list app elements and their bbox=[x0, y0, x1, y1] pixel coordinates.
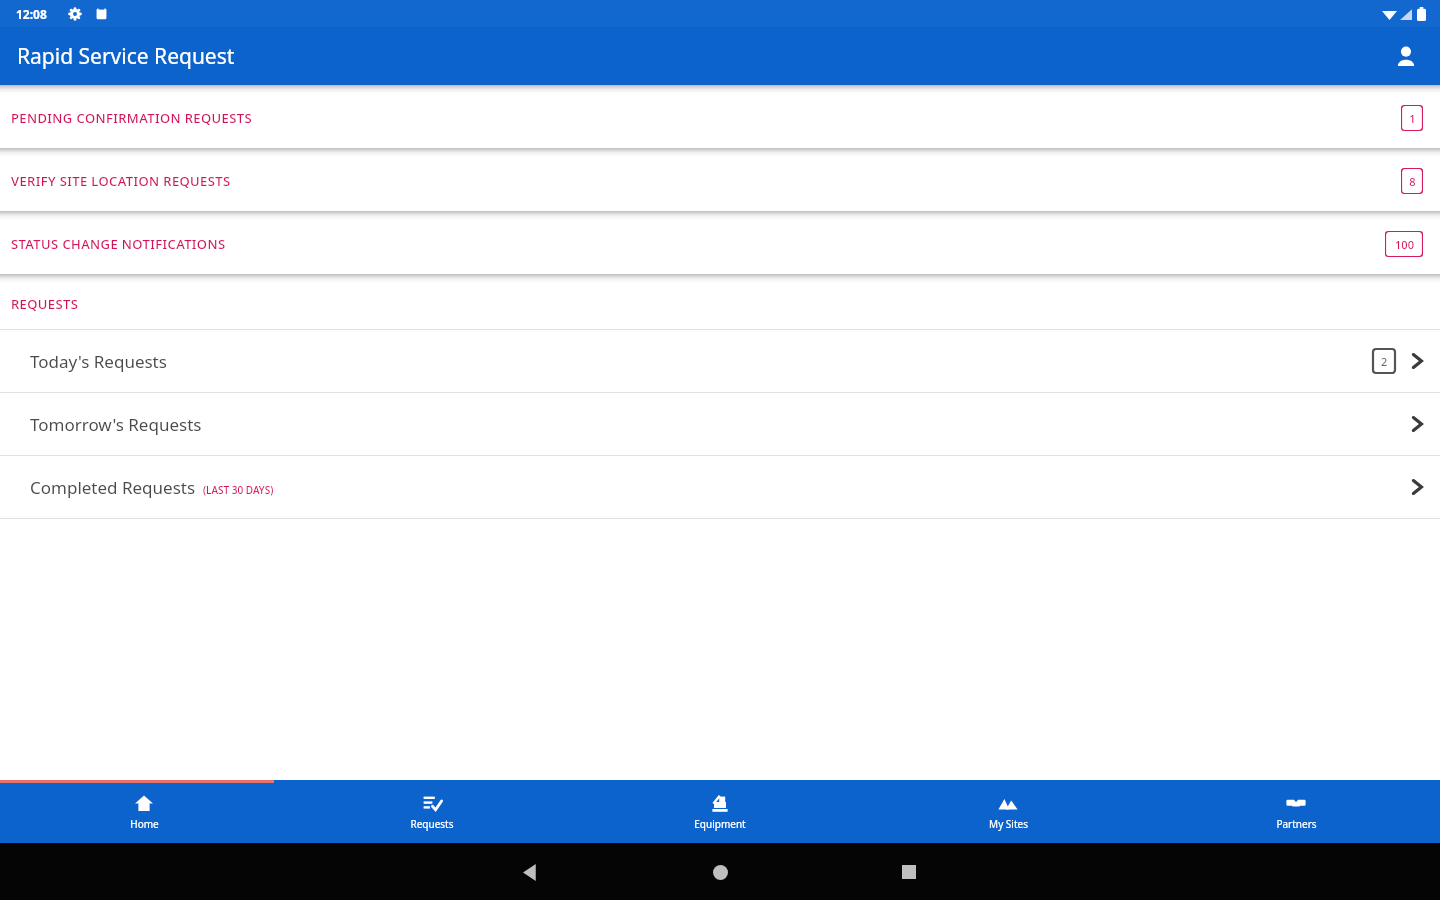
button[interactable]: Requests bbox=[288, 780, 576, 843]
staticText: Tomorrow's Requests bbox=[30, 413, 202, 436]
button[interactable]: Back bbox=[518, 859, 544, 885]
staticText: 2 bbox=[1381, 354, 1388, 369]
button[interactable]: Today's Requests bbox=[0, 330, 1440, 392]
staticText: REQUESTS bbox=[11, 295, 79, 313]
staticText: 100 bbox=[1395, 237, 1414, 252]
staticText: Today's Requests bbox=[30, 350, 167, 373]
staticText: Requests bbox=[410, 817, 454, 831]
staticText: My Sites bbox=[989, 817, 1028, 831]
button[interactable]: Home bbox=[707, 859, 733, 885]
button[interactable]: PENDING CONFIRMATION REQUESTS bbox=[0, 85, 1440, 148]
button[interactable]: Partners bbox=[1152, 780, 1440, 843]
staticText: Partners bbox=[1276, 817, 1317, 831]
button[interactable]: STATUS CHANGE NOTIFICATIONS bbox=[0, 211, 1440, 274]
button[interactable]: Tomorrow's Requests bbox=[0, 393, 1440, 455]
button[interactable]: Recents bbox=[896, 859, 922, 885]
button[interactable]: Home bbox=[0, 780, 288, 843]
button[interactable]: Equipment bbox=[576, 780, 864, 843]
button[interactable]: Account bbox=[1382, 32, 1430, 80]
staticText: (LAST 30 DAYS) bbox=[203, 483, 274, 497]
staticText: 12:08 bbox=[16, 6, 47, 22]
staticText: STATUS CHANGE NOTIFICATIONS bbox=[11, 235, 226, 253]
staticText: Completed Requests bbox=[30, 476, 196, 499]
staticText: Rapid Service Request bbox=[17, 42, 235, 71]
staticText: Equipment bbox=[694, 817, 746, 831]
button[interactable]: Completed Requests bbox=[0, 456, 1440, 518]
staticText: VERIFY SITE LOCATION REQUESTS bbox=[11, 172, 231, 190]
button[interactable]: VERIFY SITE LOCATION REQUESTS bbox=[0, 148, 1440, 211]
staticText: 8 bbox=[1409, 174, 1416, 189]
staticText: 1 bbox=[1409, 111, 1416, 126]
staticText: PENDING CONFIRMATION REQUESTS bbox=[11, 109, 253, 127]
button[interactable]: My Sites bbox=[864, 780, 1152, 843]
staticText: Home bbox=[130, 817, 159, 831]
